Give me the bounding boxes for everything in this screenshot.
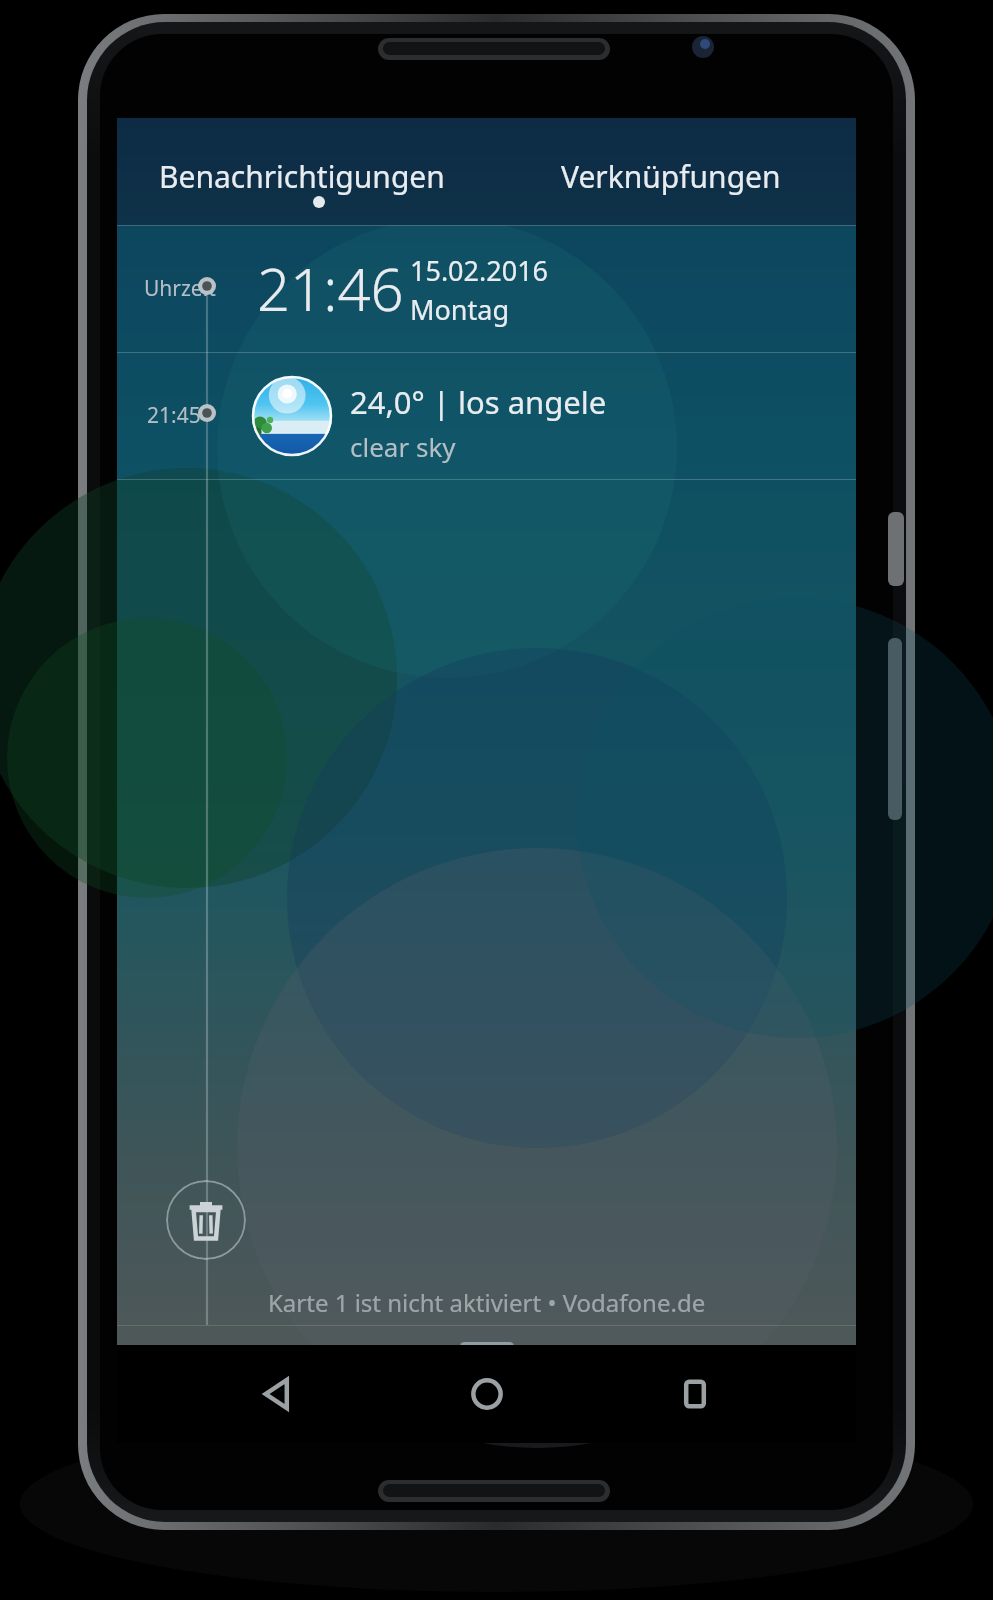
staticText: Montag (410, 291, 510, 328)
staticText: 24,0° | los angele (350, 381, 607, 423)
button[interactable]: Benachrichtigungen (117, 118, 486, 225)
staticText: Uhrzeit (144, 274, 216, 303)
staticText: Benachrichtigungen (159, 156, 445, 197)
button[interactable]: Verknüpfungen (486, 118, 856, 225)
button[interactable]: Recent apps (647, 1346, 743, 1442)
staticText: 21:46 (257, 249, 404, 328)
button[interactable]: Ziehen (460, 1342, 514, 1351)
button[interactable]: Back (230, 1346, 326, 1442)
staticText: 15.02.2016 (410, 252, 549, 289)
staticText: 21:45 (147, 401, 201, 430)
button[interactable]: Home (439, 1346, 535, 1442)
staticText: Verknüpfungen (561, 156, 781, 197)
staticText: clear sky (350, 429, 456, 464)
button[interactable]: Alle löschen (166, 1180, 246, 1260)
staticText: Karte 1 ist nicht aktiviert • Vodafone.d… (268, 1286, 706, 1319)
button[interactable]: Uhrzeit (117, 226, 856, 353)
button[interactable]: 21:45 (117, 353, 856, 480)
